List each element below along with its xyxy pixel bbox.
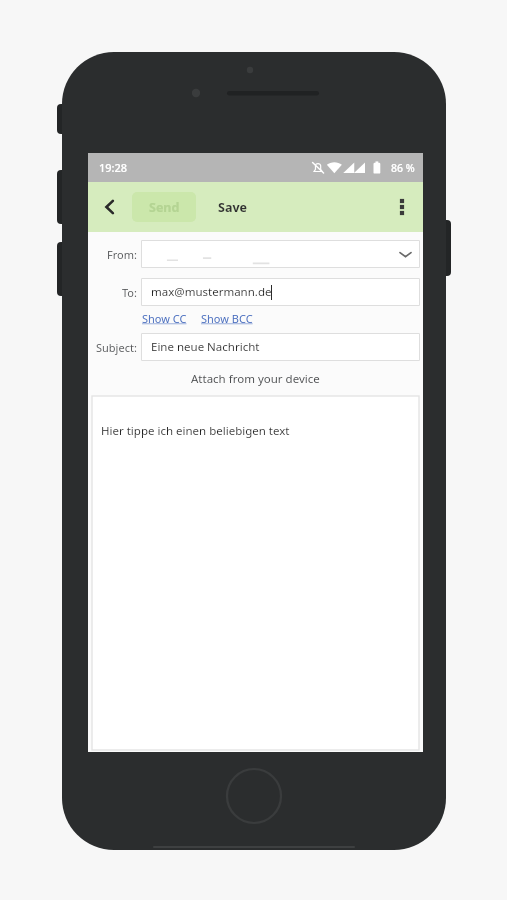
staticText: max@mustermann.de bbox=[151, 284, 272, 300]
button[interactable]: More options bbox=[381, 186, 423, 228]
staticText: From: bbox=[107, 247, 137, 262]
button[interactable]: Show BCC bbox=[201, 311, 253, 326]
staticText: Eine neue Nachricht bbox=[151, 339, 260, 355]
button[interactable]: Eine neue Nachricht bbox=[142, 334, 419, 360]
button[interactable]: max@mustermann.de bbox=[142, 279, 419, 305]
staticText: To: bbox=[122, 285, 137, 300]
staticText: Hier tippe ich einen beliebigen text bbox=[101, 423, 290, 439]
staticText: Subject: bbox=[96, 340, 137, 355]
button[interactable]: Send bbox=[132, 192, 196, 222]
staticText: Show CC bbox=[142, 311, 187, 326]
staticText: Save bbox=[218, 199, 247, 216]
staticText: Attach from your device bbox=[191, 371, 320, 387]
staticText: Show BCC bbox=[201, 311, 253, 326]
button[interactable]: Back bbox=[88, 185, 132, 229]
button[interactable] bbox=[142, 241, 419, 267]
button[interactable]: Attach from your device bbox=[88, 368, 423, 390]
staticText: 86 % bbox=[391, 161, 415, 175]
button[interactable]: Save bbox=[214, 190, 251, 224]
button[interactable]: Show CC bbox=[142, 311, 187, 326]
button[interactable]: Hier tippe ich einen beliebigen text bbox=[92, 396, 419, 750]
staticText: 19:28 bbox=[99, 160, 128, 175]
staticText: Send bbox=[149, 199, 180, 216]
